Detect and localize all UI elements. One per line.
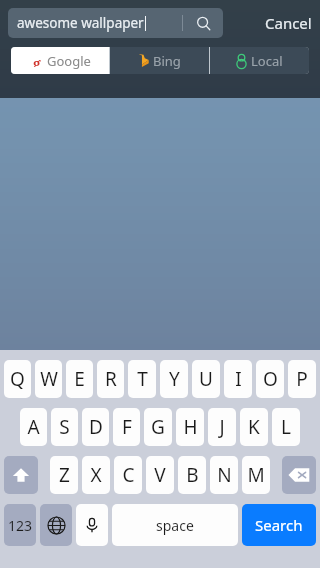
button[interactable]: Backspace	[282, 456, 316, 494]
staticText: H	[183, 414, 198, 440]
staticText: S	[59, 414, 70, 440]
staticText: Bing	[153, 52, 181, 70]
staticText: P	[296, 366, 308, 392]
button[interactable]: C	[114, 456, 142, 494]
button[interactable]: W	[35, 360, 62, 398]
button[interactable]: 123	[4, 504, 36, 546]
staticText: M	[247, 462, 265, 488]
button[interactable]: Cancel	[265, 8, 312, 38]
staticText: g	[33, 54, 41, 67]
staticText: Cancel	[265, 13, 312, 33]
staticText: Google	[47, 52, 91, 70]
staticText: Q	[10, 366, 25, 392]
button[interactable]: Z	[50, 456, 78, 494]
button[interactable]: Search	[183, 8, 223, 38]
button[interactable]: I	[224, 360, 252, 398]
staticText: U	[199, 366, 213, 392]
staticText: G	[151, 414, 165, 440]
button[interactable]: J	[208, 408, 236, 446]
button[interactable]: K	[240, 408, 268, 446]
button[interactable]: Shift	[4, 456, 38, 494]
button[interactable]: B	[178, 456, 206, 494]
staticText: Search	[255, 515, 303, 535]
button[interactable]: Bing	[110, 47, 209, 74]
button[interactable]: Local	[210, 47, 309, 74]
button[interactable]: Globe	[40, 504, 72, 546]
staticText: V	[154, 462, 166, 488]
button[interactable]: H	[176, 408, 204, 446]
staticText: 123	[8, 516, 33, 535]
staticText: N	[217, 462, 232, 488]
staticText: awesome wallpaper	[17, 14, 144, 32]
staticText: A	[27, 414, 40, 440]
button[interactable]: Search	[242, 504, 316, 546]
button[interactable]: M	[242, 456, 270, 494]
staticText: B	[186, 462, 199, 488]
button[interactable]: X	[82, 456, 110, 494]
staticText: E	[74, 366, 85, 392]
staticText: R	[105, 366, 117, 392]
button[interactable]: E	[66, 360, 93, 398]
button[interactable]: Dictate	[76, 504, 108, 546]
button[interactable]: F	[113, 408, 140, 446]
button[interactable]: S	[51, 408, 78, 446]
staticText: J	[219, 414, 225, 440]
button[interactable]: R	[97, 360, 124, 398]
staticText: W	[40, 366, 58, 392]
staticText: K	[248, 414, 260, 440]
staticText: Local	[251, 52, 283, 70]
staticText: O	[263, 366, 278, 392]
staticText: Z	[59, 462, 70, 488]
button[interactable]: awesome wallpaper	[8, 8, 223, 38]
staticText: F	[122, 414, 132, 440]
button[interactable]: G	[144, 408, 172, 446]
button[interactable]: O	[256, 360, 284, 398]
staticText: Y	[169, 366, 180, 392]
button[interactable]: A	[20, 408, 47, 446]
staticText: C	[122, 462, 135, 488]
staticText: space	[156, 516, 194, 535]
button[interactable]: P	[288, 360, 316, 398]
button[interactable]: g	[11, 47, 109, 74]
button[interactable]: L	[272, 408, 300, 446]
staticText: X	[90, 462, 102, 488]
staticText: T	[137, 366, 148, 392]
staticText: I	[235, 366, 242, 392]
button[interactable]: V	[146, 456, 174, 494]
button[interactable]: D	[82, 408, 109, 446]
button[interactable]: Y	[160, 360, 188, 398]
staticText: L	[281, 414, 291, 440]
button[interactable]: T	[128, 360, 156, 398]
button[interactable]: N	[210, 456, 238, 494]
button[interactable]: space	[112, 504, 238, 546]
button[interactable]: U	[192, 360, 220, 398]
staticText: D	[89, 414, 103, 440]
button[interactable]: Q	[4, 360, 31, 398]
